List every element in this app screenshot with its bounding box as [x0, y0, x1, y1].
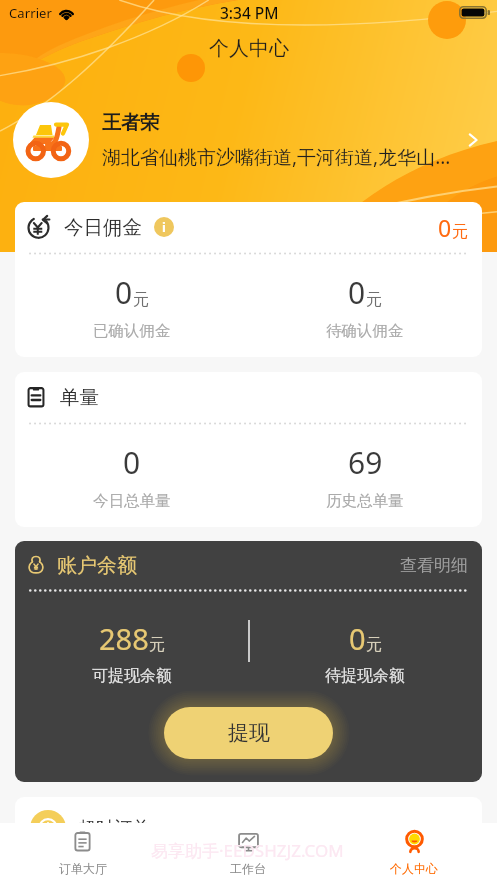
staticText: 易享助手·EEDSHZJZ.COM [151, 839, 344, 862]
staticText: 超时订单 [78, 817, 150, 840]
staticText: 0 [349, 619, 366, 658]
staticText: i [162, 218, 166, 236]
staticText: Carrier [9, 4, 53, 22]
staticText: 个人中心 [390, 861, 438, 876]
staticText: 订单大厅 [59, 861, 107, 876]
button[interactable]: 查看明细 [400, 555, 468, 576]
staticText: 个人中心 [209, 36, 289, 61]
staticText: 可提现余额 [92, 666, 172, 686]
staticText: 0 [348, 272, 366, 313]
staticText: 待确认佣金 [326, 321, 404, 341]
staticText: 0 [115, 272, 133, 313]
staticText: 元 [366, 635, 382, 655]
staticText: 元 [366, 290, 382, 310]
staticText: 0 [438, 212, 452, 243]
staticText: 查看明细 [400, 555, 468, 576]
staticText: 湖北省仙桃市沙嘴街道,干河街道,龙华山... [102, 144, 451, 170]
staticText: 3:34 PM [220, 2, 279, 23]
button[interactable]: 工作台 [165, 823, 331, 883]
button[interactable]: 提现 [164, 707, 333, 759]
staticText: 工作台 [230, 861, 266, 876]
staticText: 元 [149, 635, 165, 655]
button[interactable]: 王者荣 [0, 102, 497, 178]
staticText: 69 [348, 442, 383, 483]
staticText: 元 [133, 290, 149, 310]
button[interactable]: 个人中心 [331, 823, 497, 883]
staticText: 288 [99, 619, 149, 658]
staticText: 元 [452, 222, 468, 242]
staticText: 已确认佣金 [93, 321, 171, 341]
button[interactable]: Info [154, 217, 174, 237]
staticText: 提现 [228, 720, 270, 746]
staticText: 今日总单量 [93, 491, 171, 511]
staticText: 王者荣 [102, 111, 159, 135]
staticText: 0 [123, 442, 141, 483]
staticText: 单量 [60, 385, 99, 410]
staticText: 历史总单量 [326, 491, 404, 511]
staticText: 待提现余额 [325, 666, 405, 686]
button[interactable]: 订单大厅 [0, 823, 165, 883]
button[interactable]: 超时订单 [15, 797, 482, 846]
staticText: 今日佣金 [64, 215, 142, 240]
staticText: 账户余额 [57, 553, 137, 578]
